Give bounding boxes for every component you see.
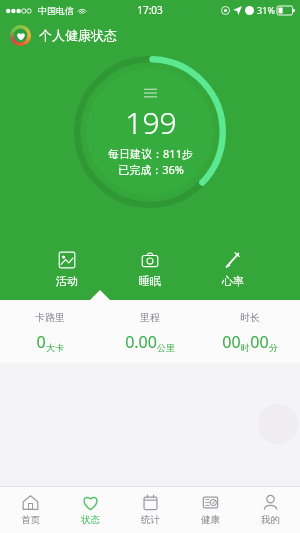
staticText: 分 <box>269 342 278 353</box>
staticText: 我的 <box>261 514 280 526</box>
staticText: 199 <box>125 102 177 143</box>
button[interactable]: 统计 <box>120 487 180 533</box>
button[interactable]: 睡眠 <box>131 249 169 290</box>
button[interactable]: 状态 <box>60 487 120 533</box>
staticText: 中国电信 <box>38 5 74 16</box>
button[interactable]: 活动 <box>48 249 86 290</box>
staticText: 统计 <box>141 514 160 526</box>
staticText: 里程 <box>140 311 160 324</box>
staticText: 时长 <box>240 311 260 324</box>
button[interactable]: 健康 <box>180 487 240 533</box>
staticText: 17:03 <box>137 3 163 17</box>
staticText: 31% <box>257 4 275 16</box>
button[interactable]: 心率 <box>214 249 252 290</box>
button[interactable]: 时长 <box>200 311 300 353</box>
staticText: 状态 <box>81 514 100 526</box>
staticText: 活动 <box>56 274 78 288</box>
staticText: 睡眠 <box>139 274 161 288</box>
staticText: 个人健康状态 <box>39 27 117 43</box>
button[interactable]: 卡路里 <box>0 311 100 353</box>
staticText: 卡路里 <box>35 311 65 324</box>
staticText: 00 <box>222 331 241 353</box>
staticText: 健康 <box>201 514 220 526</box>
staticText: 已完成：36% <box>118 162 184 177</box>
staticText: 心率 <box>222 274 244 288</box>
staticText: 0 <box>36 331 46 353</box>
staticText: 首页 <box>21 514 40 526</box>
staticText: 大卡 <box>46 342 64 353</box>
staticText: 时 <box>241 342 250 353</box>
staticText: 公里 <box>157 342 175 353</box>
button[interactable]: 我的 <box>240 487 300 533</box>
button[interactable]: 里程 <box>100 311 200 353</box>
staticText: 00 <box>250 331 269 353</box>
staticText: 0.00 <box>125 331 157 353</box>
button[interactable]: 首页 <box>0 487 60 533</box>
staticText: 每日建议：811步 <box>108 146 193 161</box>
